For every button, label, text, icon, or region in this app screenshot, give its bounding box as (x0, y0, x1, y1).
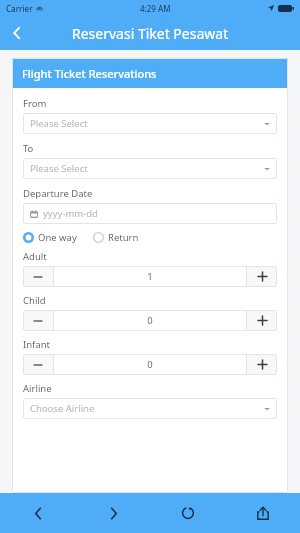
staticText: 0 (147, 358, 153, 371)
staticText: Adult (23, 250, 47, 263)
staticText: Carrier (6, 3, 33, 14)
button[interactable]: Forward (93, 493, 133, 533)
staticText: 0 (147, 314, 153, 327)
button[interactable]: Back (18, 493, 58, 533)
staticText: 4:29 AM (140, 3, 171, 14)
staticText: Airline (23, 382, 52, 395)
button[interactable]: Increase (247, 266, 277, 287)
staticText: From (23, 97, 47, 110)
button[interactable]: Increase (247, 354, 277, 375)
staticText: Return (108, 231, 139, 244)
button[interactable]: Please Select (23, 113, 277, 134)
staticText: Please Select (30, 117, 88, 130)
button[interactable]: Choose Airline (23, 398, 277, 419)
button[interactable]: Increase (247, 310, 277, 331)
button[interactable]: Please Select (23, 158, 277, 179)
staticText: yyyy-mm-dd (43, 207, 98, 220)
button[interactable]: Reload (168, 493, 208, 533)
staticText: 1 (147, 270, 153, 283)
button[interactable]: One way (23, 231, 77, 244)
button[interactable]: Decrease (23, 310, 53, 331)
button[interactable]: Share (243, 493, 283, 533)
button[interactable]: yyyy-mm-dd (23, 203, 277, 224)
staticText: Reservasi Tiket Pesawat (72, 24, 229, 43)
button[interactable]: Decrease (23, 266, 53, 287)
staticText: Child (23, 294, 46, 307)
staticText: To (23, 142, 34, 155)
staticText: Departure Date (23, 187, 93, 200)
staticText: Infant (23, 338, 50, 351)
staticText: One way (38, 231, 77, 244)
staticText: Please Select (30, 162, 88, 175)
staticText: Flight Ticket Reservations (22, 66, 157, 81)
button[interactable]: Decrease (23, 354, 53, 375)
button[interactable]: Back (0, 16, 34, 50)
staticText: Choose Airline (30, 402, 95, 415)
button[interactable]: Return (93, 231, 139, 244)
